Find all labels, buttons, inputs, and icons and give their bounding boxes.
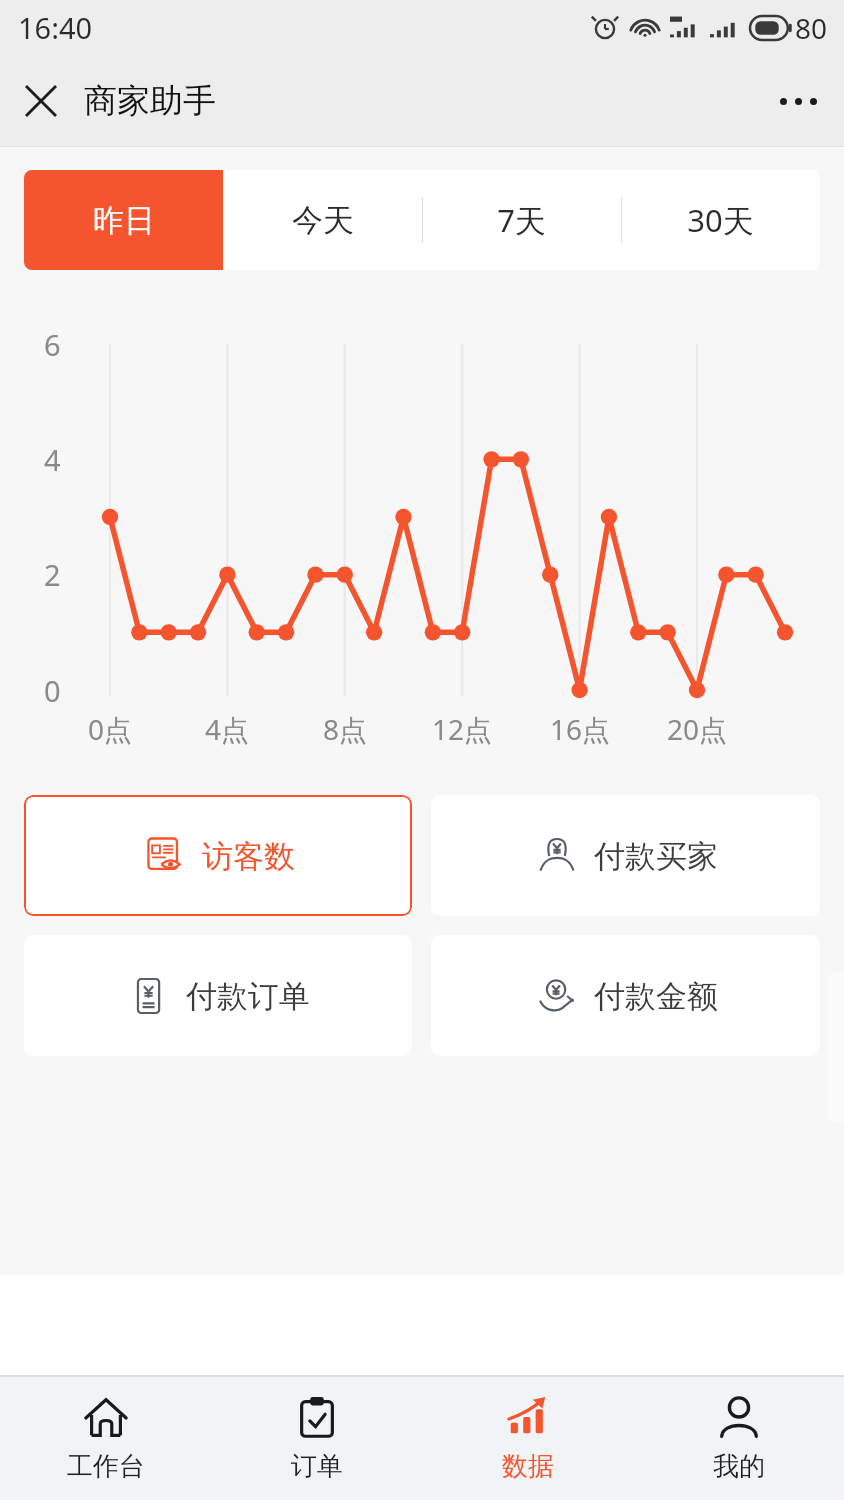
button[interactable]: 订单 <box>211 1377 422 1500</box>
staticText: 付款订单 <box>186 977 310 1016</box>
button[interactable]: 工作台 <box>0 1377 211 1500</box>
staticText: 访客数 <box>202 837 295 876</box>
button[interactable]: 30天 <box>621 170 820 270</box>
button[interactable]: 昨日 <box>24 170 223 270</box>
staticText: 6 <box>44 325 61 364</box>
staticText: 8点 <box>307 710 383 748</box>
staticText: 20点 <box>659 710 735 748</box>
button[interactable]: 付款买家 <box>431 795 820 916</box>
staticText: 80 <box>795 9 828 47</box>
staticText: 今天 <box>292 201 354 240</box>
staticText: 30天 <box>687 199 754 241</box>
staticText: 付款买家 <box>594 837 718 876</box>
button[interactable]: 我的 <box>633 1377 844 1500</box>
button[interactable]: 访客数 <box>24 795 412 916</box>
button[interactable]: 数据 <box>422 1377 633 1500</box>
staticText: 我的 <box>713 1450 765 1483</box>
staticText: 7天 <box>497 199 546 241</box>
staticText: 昨日 <box>93 201 155 240</box>
button[interactable]: 7天 <box>422 170 621 270</box>
staticText: 12点 <box>424 710 500 748</box>
staticText: 0 <box>44 671 61 710</box>
staticText: 4 <box>44 440 61 479</box>
staticText: 工作台 <box>67 1450 145 1483</box>
staticText: 2 <box>44 555 61 594</box>
button[interactable]: Close <box>12 72 70 130</box>
staticText: 4点 <box>189 710 265 748</box>
staticText: 16:40 <box>18 8 93 47</box>
staticText: 16点 <box>542 710 618 748</box>
staticText: 数据 <box>502 1450 554 1483</box>
staticText: 订单 <box>291 1450 343 1483</box>
button[interactable]: 今天 <box>223 170 422 270</box>
button[interactable]: More options <box>766 69 830 133</box>
staticText: 0点 <box>72 710 148 748</box>
button[interactable]: 付款金额 <box>431 935 820 1056</box>
button[interactable]: 付款订单 <box>24 935 412 1056</box>
staticText: 付款金额 <box>594 977 718 1016</box>
staticText: 商家助手 <box>84 80 216 122</box>
